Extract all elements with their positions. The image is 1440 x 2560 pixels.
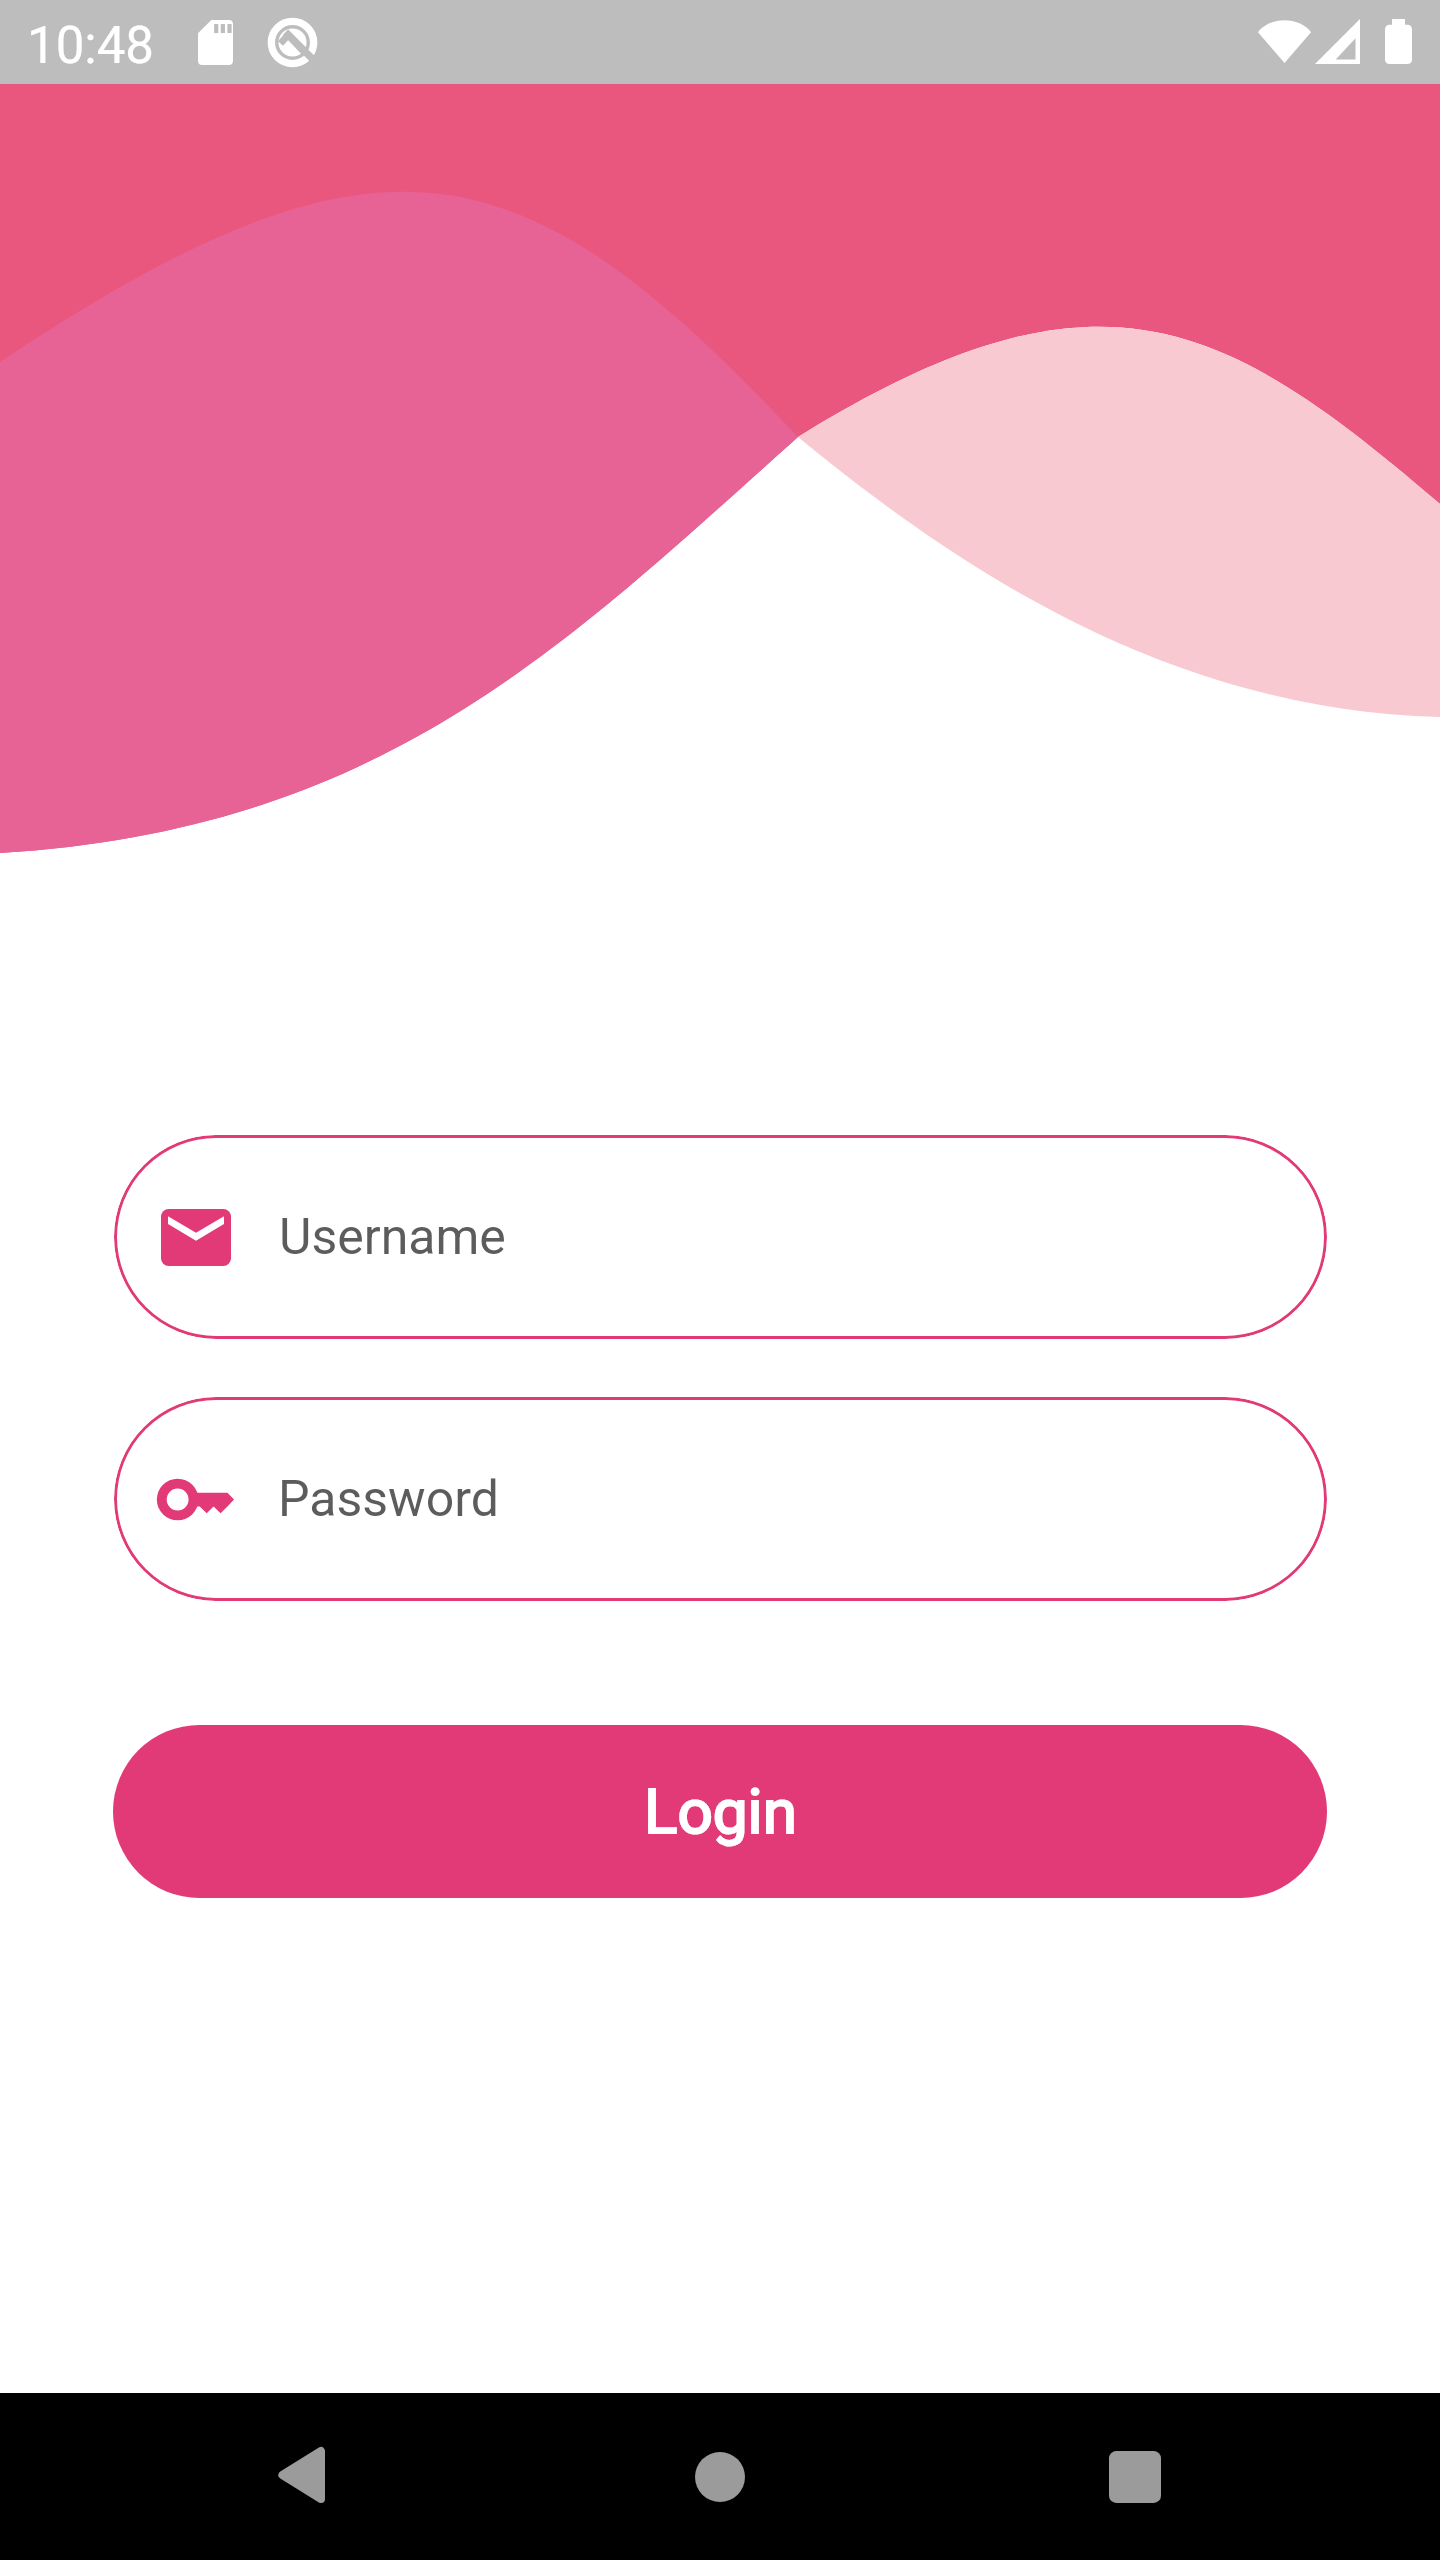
button[interactable]: Home [630,2393,810,2560]
button[interactable]: Login [113,1725,1327,1898]
staticText: Login [644,1775,797,1848]
button[interactable]: Password [114,1397,1327,1601]
button[interactable]: Username [114,1135,1327,1339]
button[interactable]: Recent apps [1045,2393,1225,2560]
staticText: Username [279,1208,506,1267]
staticText: Password [278,1470,499,1529]
button[interactable]: Back [210,2391,390,2558]
staticText: 10:48 [27,16,155,76]
